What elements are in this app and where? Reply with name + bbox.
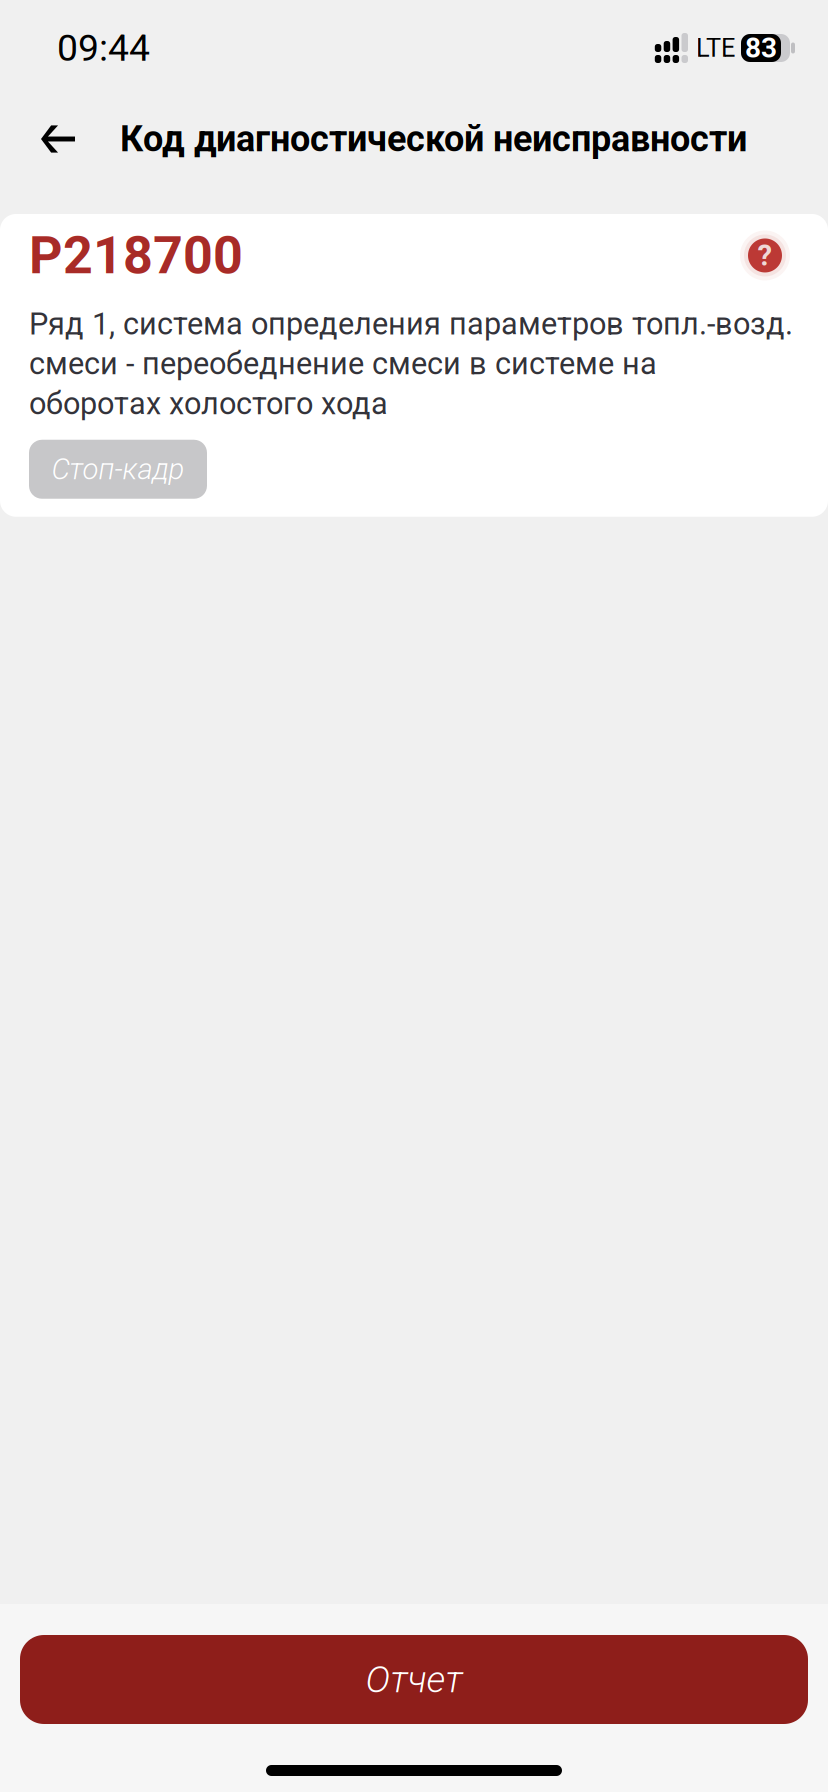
staticText: P218700: [29, 225, 243, 286]
staticText: ?: [757, 238, 772, 273]
button[interactable]: Help: [748, 238, 782, 272]
staticText: Код диагностической неисправности: [120, 118, 747, 160]
staticText: 09:44: [57, 26, 150, 70]
staticText: Стоп-кадр: [51, 452, 184, 486]
button[interactable]: Отчет: [20, 1635, 808, 1724]
staticText: Отчет: [365, 1658, 462, 1701]
staticText: 83: [745, 32, 777, 64]
staticText: Ряд 1, система определения параметров то…: [29, 306, 793, 422]
button[interactable]: Back: [20, 102, 96, 175]
staticText: LTE: [696, 33, 735, 63]
button[interactable]: Стоп-кадр: [29, 440, 207, 499]
